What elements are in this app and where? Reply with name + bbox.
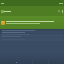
button[interactable]: Profile <box>1 21 5 25</box>
button[interactable]: More options <box>61 10 64 13</box>
button[interactable]: Home <box>15 61 17 63</box>
button[interactable]: Navigate up <box>0 9 4 13</box>
button[interactable]: Profile <box>47 61 49 63</box>
button[interactable]: Explore <box>31 61 33 63</box>
button[interactable]: Profile <box>0 16 64 29</box>
button[interactable]: Search <box>57 9 61 13</box>
button[interactable] <box>1 34 63 37</box>
button[interactable] <box>1 30 63 33</box>
